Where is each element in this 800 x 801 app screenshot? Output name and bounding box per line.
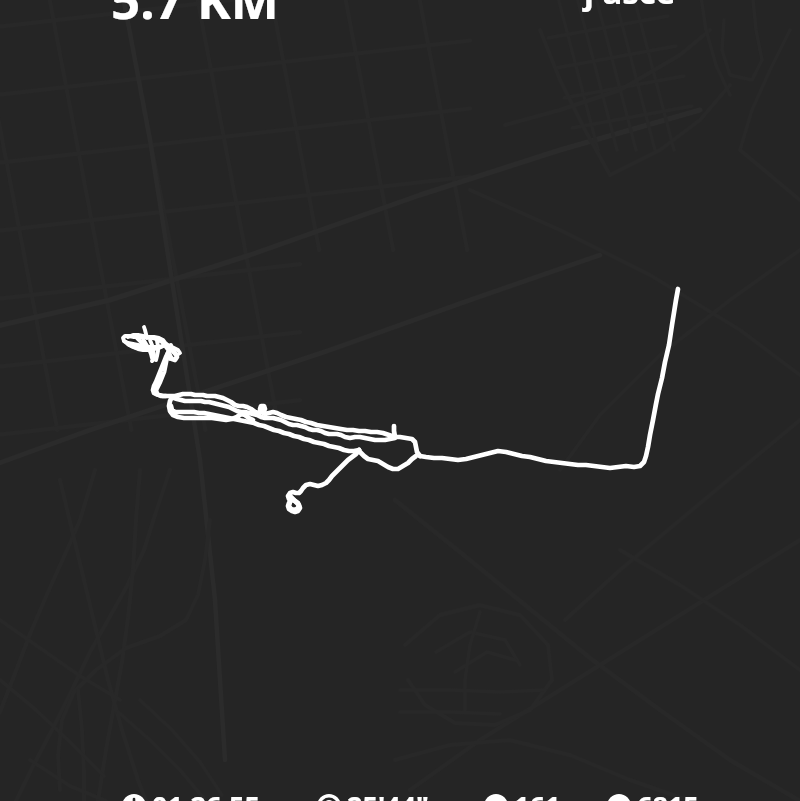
button[interactable]: 161: [484, 787, 561, 801]
button[interactable]: 01:26:55: [122, 787, 260, 801]
button[interactable]: 5.7 KM: [0, 0, 800, 801]
staticText: 01:26:55: [152, 787, 260, 801]
button[interactable]: 6815: [607, 787, 699, 801]
staticText: j asce: [584, 0, 676, 14]
button[interactable]: 25'44": [317, 787, 429, 801]
staticText: 25'44": [347, 787, 429, 801]
staticText: 6815: [637, 787, 699, 801]
staticText: 161: [514, 787, 561, 801]
staticText: 5.7 KM: [111, 0, 279, 24]
